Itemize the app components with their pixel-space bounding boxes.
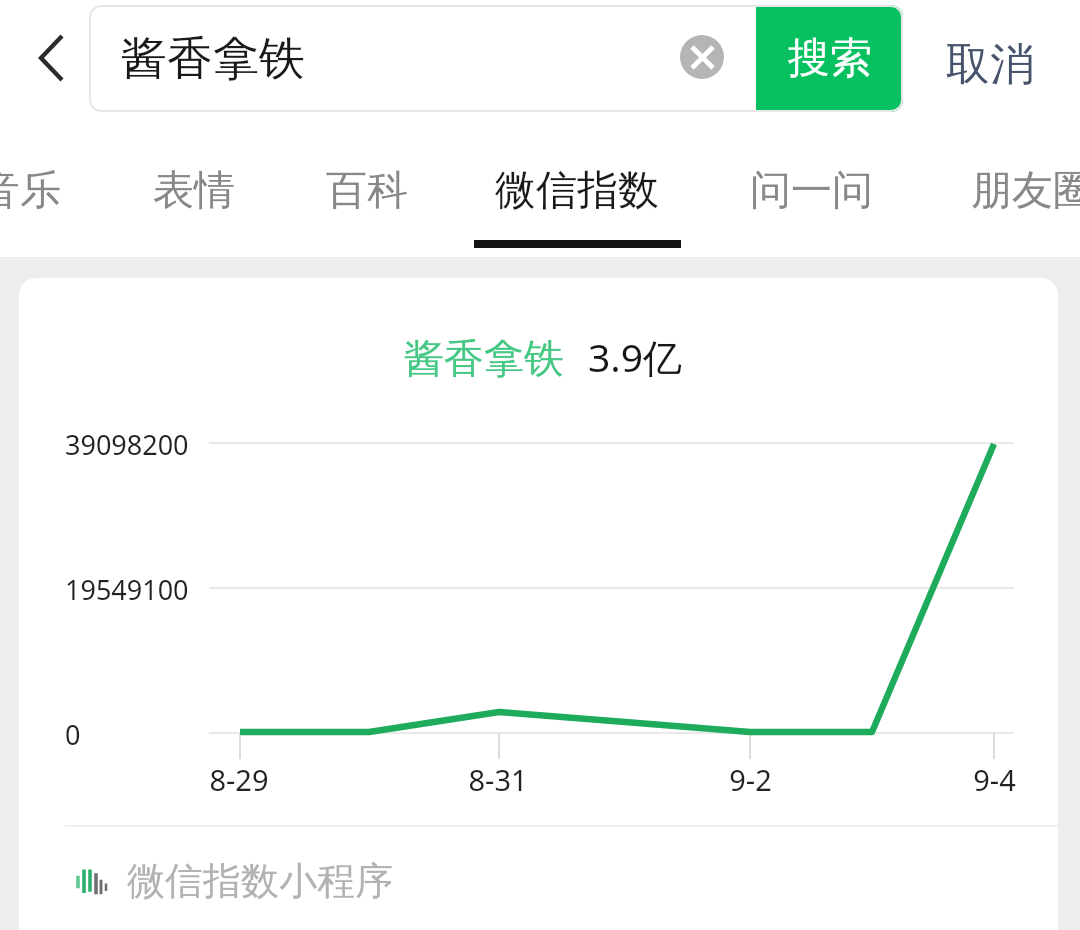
staticText: 表情 <box>153 165 235 217</box>
staticText: 酱香拿铁 <box>404 333 564 383</box>
staticText: 3.9亿 <box>588 330 683 383</box>
staticText: 百科 <box>326 165 408 217</box>
button[interactable]: 取消 <box>903 0 1077 128</box>
staticText: 问一问 <box>750 165 873 217</box>
button[interactable]: 问一问 <box>661 128 961 257</box>
staticText: 9-2 <box>729 760 772 799</box>
staticText: 朋友圈 <box>971 165 1080 217</box>
button[interactable]: 朋友圈 <box>882 128 1080 257</box>
staticText: 19549100 <box>65 571 189 608</box>
staticText: 音乐 <box>0 165 61 217</box>
staticText: 8-31 <box>468 760 528 799</box>
staticText: 酱香拿铁 <box>121 30 305 88</box>
staticText: 取消 <box>946 37 1034 92</box>
staticText: 搜索 <box>788 32 872 85</box>
staticText: 微信指数小程序 <box>127 857 393 905</box>
staticText: 39098200 <box>65 426 189 463</box>
button[interactable]: 微信指数 <box>427 128 727 257</box>
staticText: 9-4 <box>973 760 1016 799</box>
button[interactable]: 表情 <box>44 128 344 257</box>
staticText: 8-29 <box>209 760 269 799</box>
button[interactable]: Back <box>0 0 88 128</box>
button[interactable]: 百科 <box>217 128 517 257</box>
button[interactable]: 微信指数小程序 <box>65 836 485 926</box>
button[interactable]: 搜索 <box>756 5 903 112</box>
staticText: 微信指数 <box>495 165 659 217</box>
button[interactable]: Clear text <box>668 23 736 91</box>
staticText: 0 <box>65 716 81 753</box>
button[interactable]: 音乐 <box>0 128 170 257</box>
